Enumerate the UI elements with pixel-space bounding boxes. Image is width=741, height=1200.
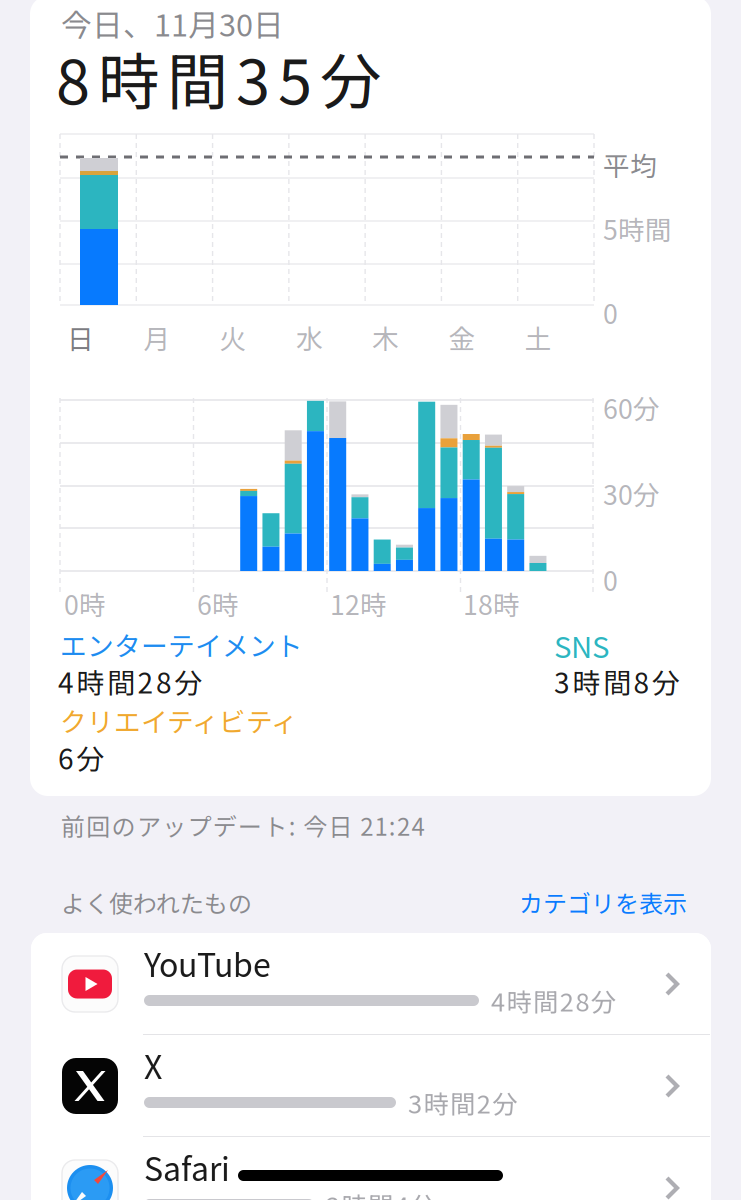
staticText: 0 [603,560,618,599]
staticText: 火 [220,318,247,357]
staticText: エンターテイメント [60,625,303,664]
staticText: 3時間2分 [408,1084,517,1121]
staticText: よく使われたもの [61,885,252,920]
staticText: 水 [296,318,323,357]
staticText: 日 [67,318,94,357]
staticText: 前回のアップデート: 今日 21:24 [61,808,424,843]
staticText: SNS [554,624,609,666]
staticText: 2時間4分 [326,1186,435,1200]
staticText: 金 [448,318,475,357]
staticText: 今日、11月30日 [61,1,284,45]
staticText: 3時間8分 [554,661,680,701]
staticText: クリエイティビティ [60,701,298,740]
staticText: 月 [143,318,170,357]
staticText: 4時間28分 [491,982,616,1019]
staticText: 60分 [603,388,660,427]
button[interactable]: YouTube [31,933,711,1035]
staticText: 0時 [64,584,106,623]
staticText: YouTube [144,940,271,986]
staticText: 8時間35分 [56,33,381,122]
button[interactable]: カテゴリを表示 [0,0,200,35]
staticText: Safari [144,1144,230,1190]
staticText: 18時 [463,584,520,623]
staticText: 土 [525,318,552,357]
staticText: 木 [372,318,399,357]
staticText: 12時 [330,584,387,623]
staticText: 5時間 [603,209,672,248]
staticText: カテゴリを表示 [519,885,687,920]
staticText: 4時間28分 [58,661,202,701]
staticText: 6時 [197,584,239,623]
staticText: 平均 [603,145,657,184]
staticText: 0 [603,293,618,332]
staticText: X [144,1042,162,1088]
button[interactable]: X [31,1035,711,1137]
button[interactable]: Safari [31,1137,711,1200]
staticText: 30分 [603,474,660,513]
staticText: 6分 [58,737,104,777]
